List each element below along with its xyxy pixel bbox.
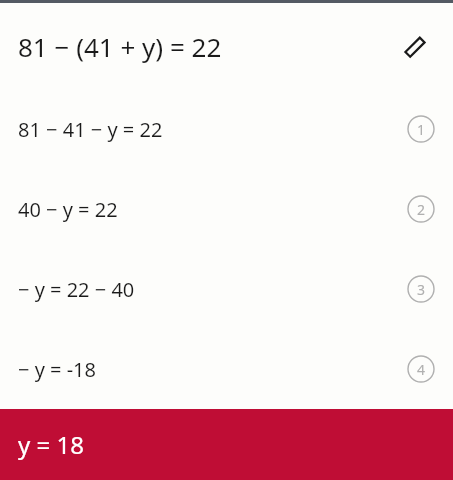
staticText: − y = -18 bbox=[18, 356, 96, 383]
button[interactable]: − y = 22 − 40 bbox=[18, 249, 435, 329]
staticText: 3 bbox=[417, 280, 426, 299]
staticText: 2 bbox=[417, 200, 426, 219]
staticText: 40 − y = 22 bbox=[18, 196, 118, 223]
button[interactable]: 81 − 41 − y = 22 bbox=[18, 89, 435, 169]
staticText: 81 − (41 + y) = 22 bbox=[18, 29, 222, 64]
staticText: 1 bbox=[417, 120, 426, 139]
button[interactable]: Edit bbox=[395, 26, 435, 66]
staticText: − y = 22 − 40 bbox=[18, 276, 135, 303]
button[interactable]: 40 − y = 22 bbox=[18, 169, 435, 249]
staticText: y = 18 bbox=[18, 428, 84, 461]
staticText: 81 − 41 − y = 22 bbox=[18, 116, 163, 143]
button[interactable]: − y = -18 bbox=[18, 329, 435, 409]
staticText: 4 bbox=[417, 360, 426, 379]
